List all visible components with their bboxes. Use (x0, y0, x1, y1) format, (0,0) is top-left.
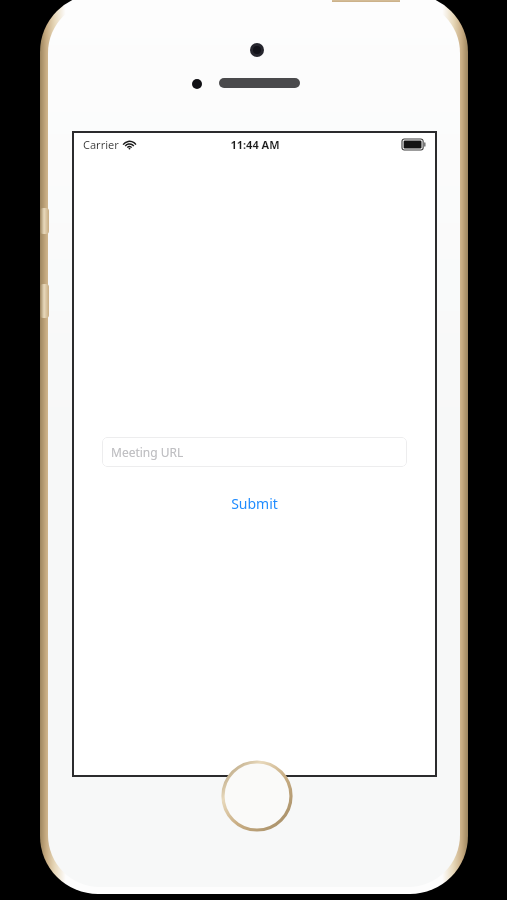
staticText: Meeting URL (111, 444, 184, 460)
staticText: Submit (231, 494, 278, 513)
button[interactable]: Meeting URL (102, 437, 407, 467)
staticText: Carrier (83, 137, 119, 152)
button[interactable]: Submit (213, 489, 296, 518)
staticText: 11:44 AM (230, 137, 280, 152)
other: Home (219, 758, 295, 834)
button[interactable]: Submit (74, 489, 435, 518)
